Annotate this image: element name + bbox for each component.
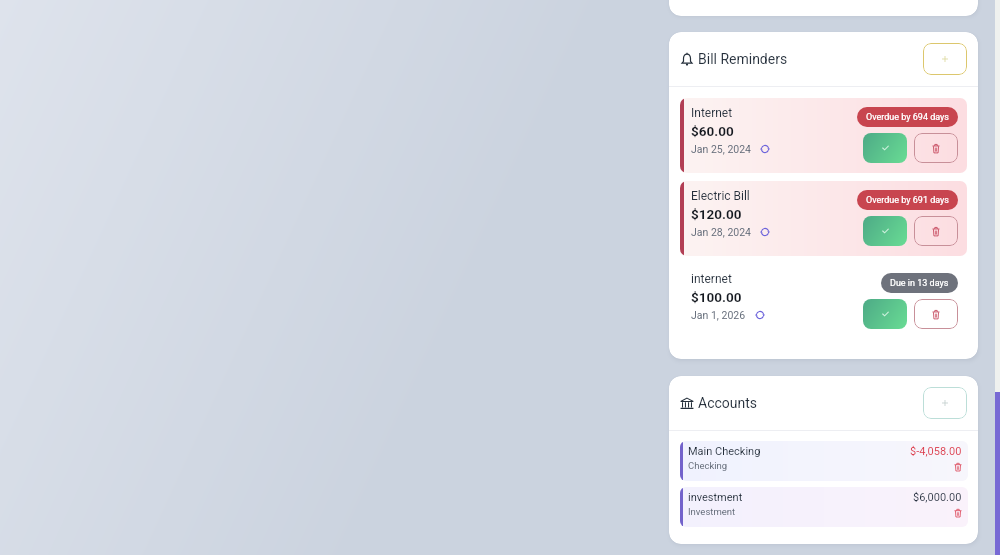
button[interactable]: Main Checking [680,441,968,481]
staticText: $120.00 [691,206,742,222]
button[interactable]: Delete bill [914,299,958,329]
button[interactable]: investment [680,487,968,527]
staticText: Electric Bill [691,189,750,203]
staticText: Overdue by 694 days [866,112,949,123]
staticText: $100.00 [691,289,742,305]
button[interactable]: Delete bill [914,216,958,246]
staticText: Investment [688,506,736,517]
button[interactable]: Add account [923,387,967,419]
staticText: Main Checking [688,445,761,458]
staticText: Jan 25, 2024 [691,143,751,155]
staticText: $-4,058.00 [910,445,962,458]
button[interactable]: Mark as paid [863,133,907,163]
staticText: Jan 1, 2026 [691,309,746,321]
staticText: Accounts [698,395,758,411]
staticText: $6,000.00 [913,491,962,504]
button[interactable]: Mark as paid [863,216,907,246]
button[interactable]: Mark as paid [863,299,907,329]
button[interactable]: Internet [680,98,967,173]
staticText: $60.00 [691,123,734,139]
button[interactable]: internet [680,264,967,339]
staticText: Internet [691,106,733,120]
staticText: investment [688,491,743,504]
staticText: Checking [688,460,728,471]
button[interactable]: Delete bill [914,133,958,163]
button[interactable]: Electric Bill [680,181,967,256]
staticText: Jan 28, 2024 [691,226,751,238]
button[interactable]: Delete account [954,508,962,518]
staticText: Bill Reminders [698,51,788,67]
staticText: internet [691,272,732,286]
staticText: Overdue by 691 days [866,195,949,206]
staticText: Due in 13 days [890,278,949,289]
button[interactable]: Delete account [954,462,962,472]
button[interactable]: Add bill reminder [923,43,967,75]
